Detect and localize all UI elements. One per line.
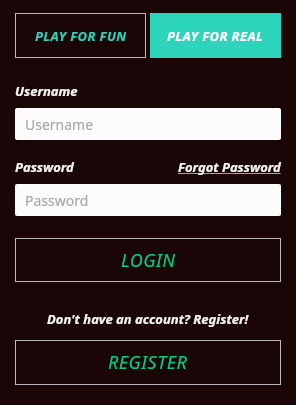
staticText: Username [15,82,78,100]
staticText: Password [25,191,89,210]
button[interactable]: PLAY FOR FUN [15,13,146,58]
button[interactable]: REGISTER [15,340,281,385]
button[interactable]: Forgot Password [178,158,281,176]
button[interactable]: LOGIN [15,238,281,282]
staticText: PLAY FOR REAL [167,27,264,45]
staticText: Username [25,115,94,134]
staticText: PLAY FOR FUN [35,27,127,45]
staticText: Don't have an account? Register! [47,310,249,328]
staticText: REGISTER [108,350,188,375]
button[interactable]: Username [15,108,281,140]
button[interactable]: PLAY FOR REAL [150,13,281,58]
button[interactable]: Password [15,184,281,216]
staticText: LOGIN [121,248,176,273]
staticText: Password [15,158,74,176]
staticText: Forgot Password [178,158,281,176]
